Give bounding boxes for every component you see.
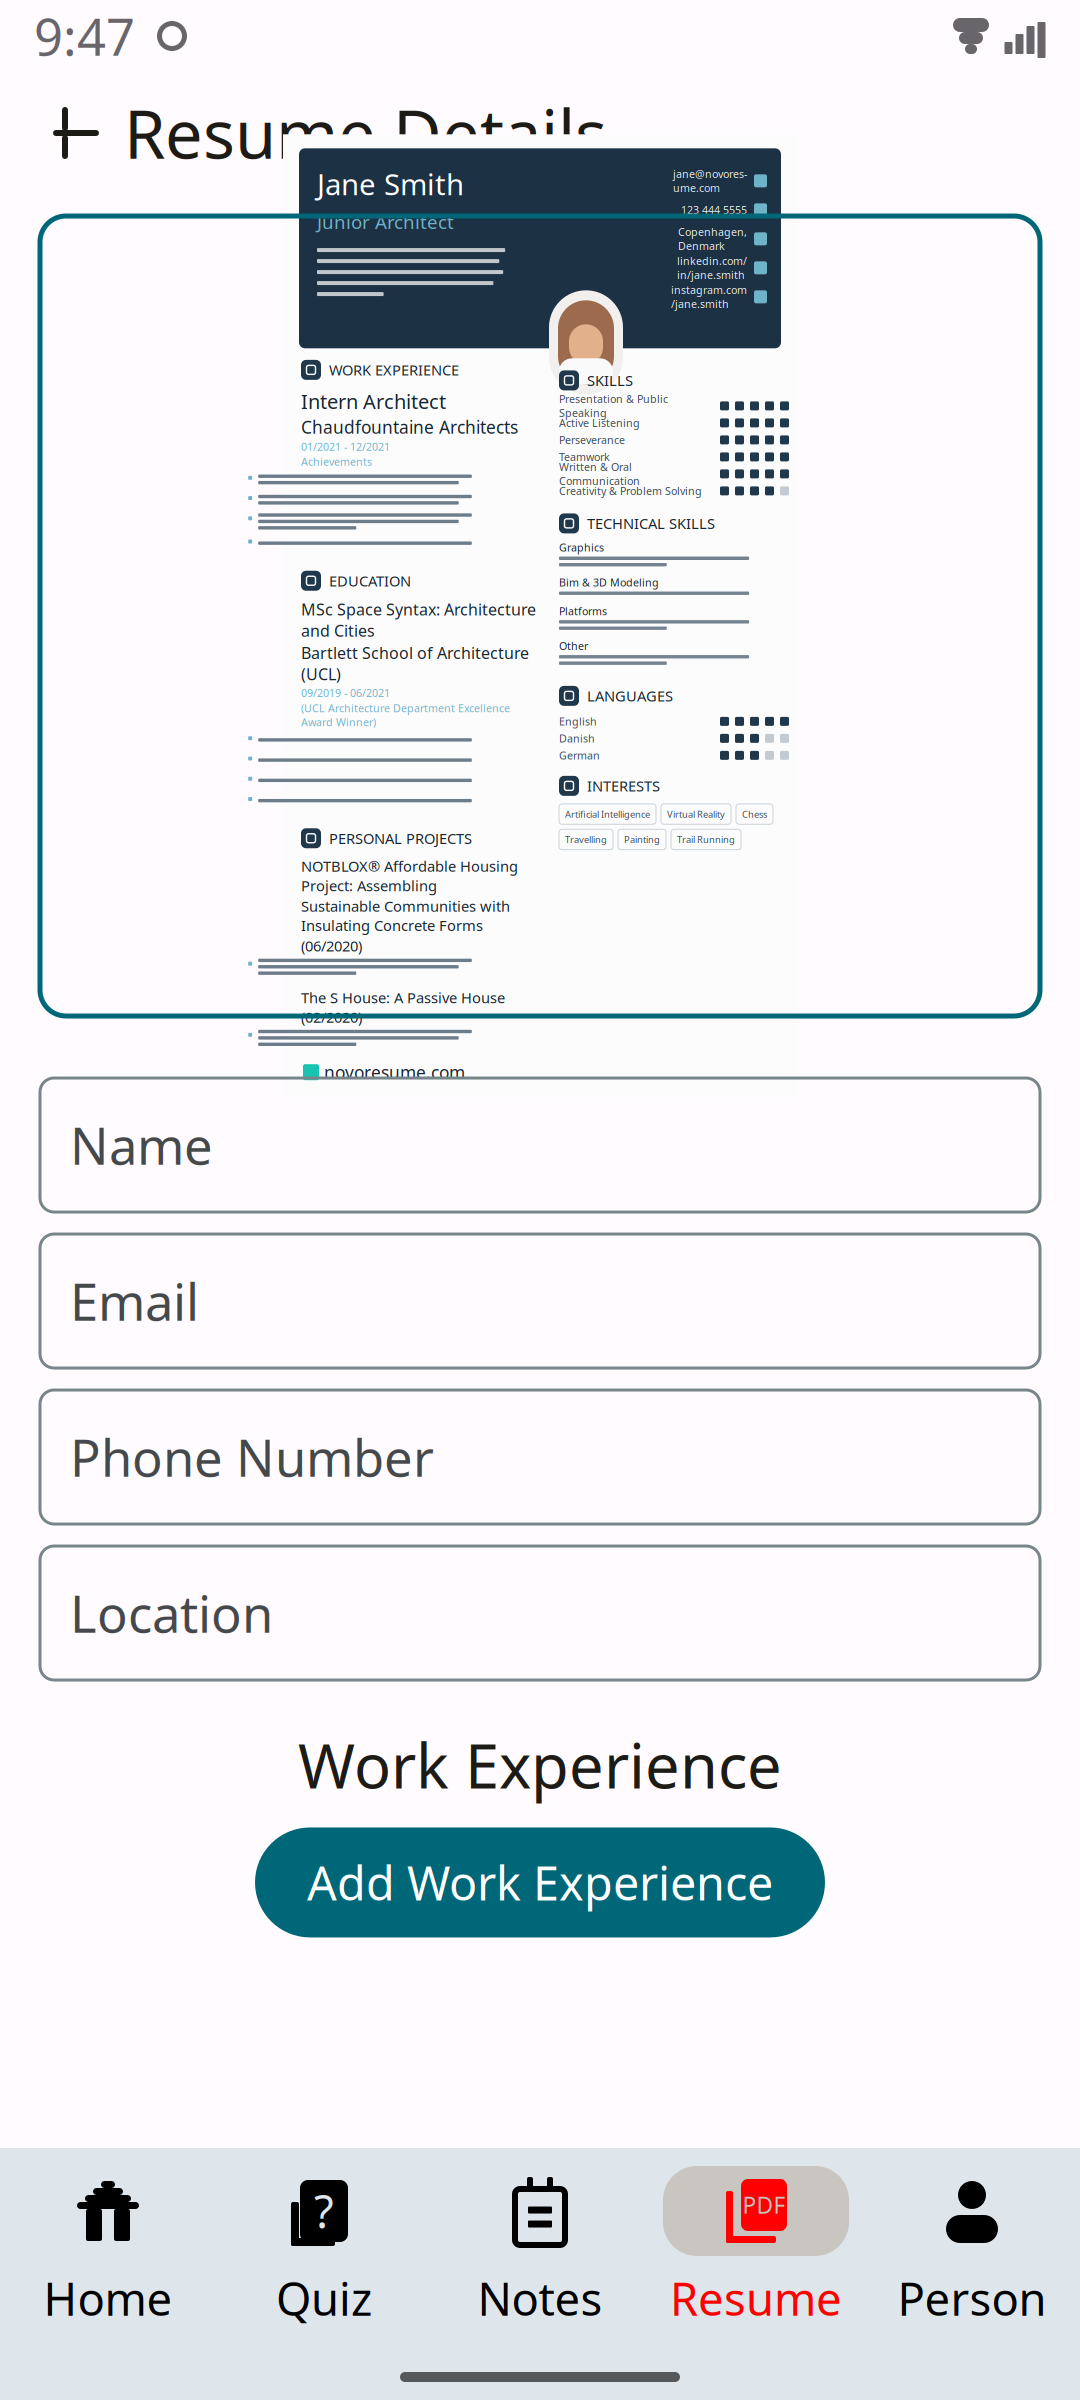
staticText: Quiz xyxy=(276,2268,372,2328)
staticText: novoresume.com xyxy=(324,1061,465,1084)
staticText: ? xyxy=(314,2181,334,2241)
staticText: Platforms xyxy=(559,604,607,618)
staticText: Jane Smith xyxy=(317,164,464,203)
staticText: Presentation & Public Speaking xyxy=(559,392,668,420)
staticText: 09/2019 - 06/2021 xyxy=(301,686,390,700)
button[interactable]: Name xyxy=(40,1078,1040,1212)
staticText: German xyxy=(559,748,600,762)
staticText: Danish xyxy=(559,731,595,745)
button[interactable]: Email xyxy=(40,1234,1040,1368)
staticText: Achievements xyxy=(301,455,372,469)
staticText: Copenhagen, Denmark xyxy=(678,225,747,253)
staticText: jane@novoresume.com xyxy=(673,167,747,195)
staticText: Painting xyxy=(624,833,660,846)
staticText: WORK EXPERIENCE xyxy=(329,360,459,380)
staticText: English xyxy=(559,714,597,728)
staticText: (06/2020) xyxy=(301,936,362,956)
staticText: Bartlett School of Architecture (UCL) xyxy=(301,642,529,685)
staticText: Person xyxy=(897,2268,1046,2328)
staticText: Active Listening xyxy=(559,416,640,430)
button[interactable]: Back xyxy=(28,85,124,181)
button[interactable]: Phone Number xyxy=(40,1390,1040,1524)
staticText: EDUCATION xyxy=(329,571,411,590)
staticText: LANGUAGES xyxy=(587,686,673,706)
button[interactable]: Location xyxy=(40,1546,1040,1680)
button[interactable]: PDF xyxy=(648,2148,864,2338)
staticText: Artificial Intelligence xyxy=(565,808,650,820)
staticText: Virtual Reality xyxy=(667,808,725,820)
staticText: Add Work Experience xyxy=(307,1851,773,1913)
staticText: Written & Oral Communication xyxy=(559,460,640,488)
staticText: NOTBLOX® Affordable Housing Project: Ass… xyxy=(301,856,518,895)
staticText: Teamwork xyxy=(559,450,610,464)
staticText: Trail Running xyxy=(677,833,735,846)
staticText: Resume Details xyxy=(124,89,607,177)
staticText: Graphics xyxy=(559,540,604,555)
button[interactable]: Add Work Experience xyxy=(255,1827,825,1937)
button[interactable]: Notes xyxy=(432,2148,648,2338)
staticText: Travelling xyxy=(565,833,607,846)
staticText: (UCL Architecture Department Excellence … xyxy=(301,701,510,729)
staticText: Work Experience xyxy=(298,1724,782,1805)
staticText: Email xyxy=(70,1267,199,1335)
staticText: 01/2021 - 12/2021 xyxy=(301,439,390,454)
staticText: instagram.com/jane.smith xyxy=(671,283,747,311)
staticText: INTERESTS xyxy=(587,776,660,796)
staticText: Chess xyxy=(742,808,767,820)
button[interactable]: Home xyxy=(0,2148,216,2338)
staticText: Junior Architect xyxy=(317,209,454,234)
staticText: Location xyxy=(70,1579,273,1647)
button[interactable]: ? xyxy=(216,2148,432,2338)
button[interactable]: Person xyxy=(864,2148,1080,2338)
staticText: Creativity & Problem Solving xyxy=(559,484,702,498)
staticText: Name xyxy=(70,1111,213,1179)
staticText: Sustainable Communities with Insulating … xyxy=(301,896,510,935)
staticText: Home xyxy=(43,2268,172,2328)
staticText: 123 444 5555 xyxy=(681,203,747,217)
staticText: MSc Space Syntax: Architecture and Citie… xyxy=(301,599,536,641)
staticText: SKILLS xyxy=(587,371,633,390)
staticText: Notes xyxy=(477,2268,602,2328)
staticText: PERSONAL PROJECTS xyxy=(329,828,472,848)
staticText: Perseverance xyxy=(559,433,625,447)
staticText: The S House: A Passive House (02/2020) xyxy=(301,988,505,1027)
staticText: PDF xyxy=(742,2190,785,2220)
staticText: Phone Number xyxy=(70,1423,434,1491)
staticText: TECHNICAL SKILLS xyxy=(587,514,715,533)
staticText: Chaudfountaine Architects xyxy=(301,415,518,438)
staticText: linkedin.com/in/jane.smith xyxy=(677,254,747,282)
staticText: 9:47 xyxy=(34,2,135,70)
staticText: Resume xyxy=(670,2268,842,2328)
staticText: Other xyxy=(559,639,588,653)
staticText: Bim & 3D Modeling xyxy=(559,575,659,590)
staticText: Intern Architect xyxy=(301,388,446,414)
